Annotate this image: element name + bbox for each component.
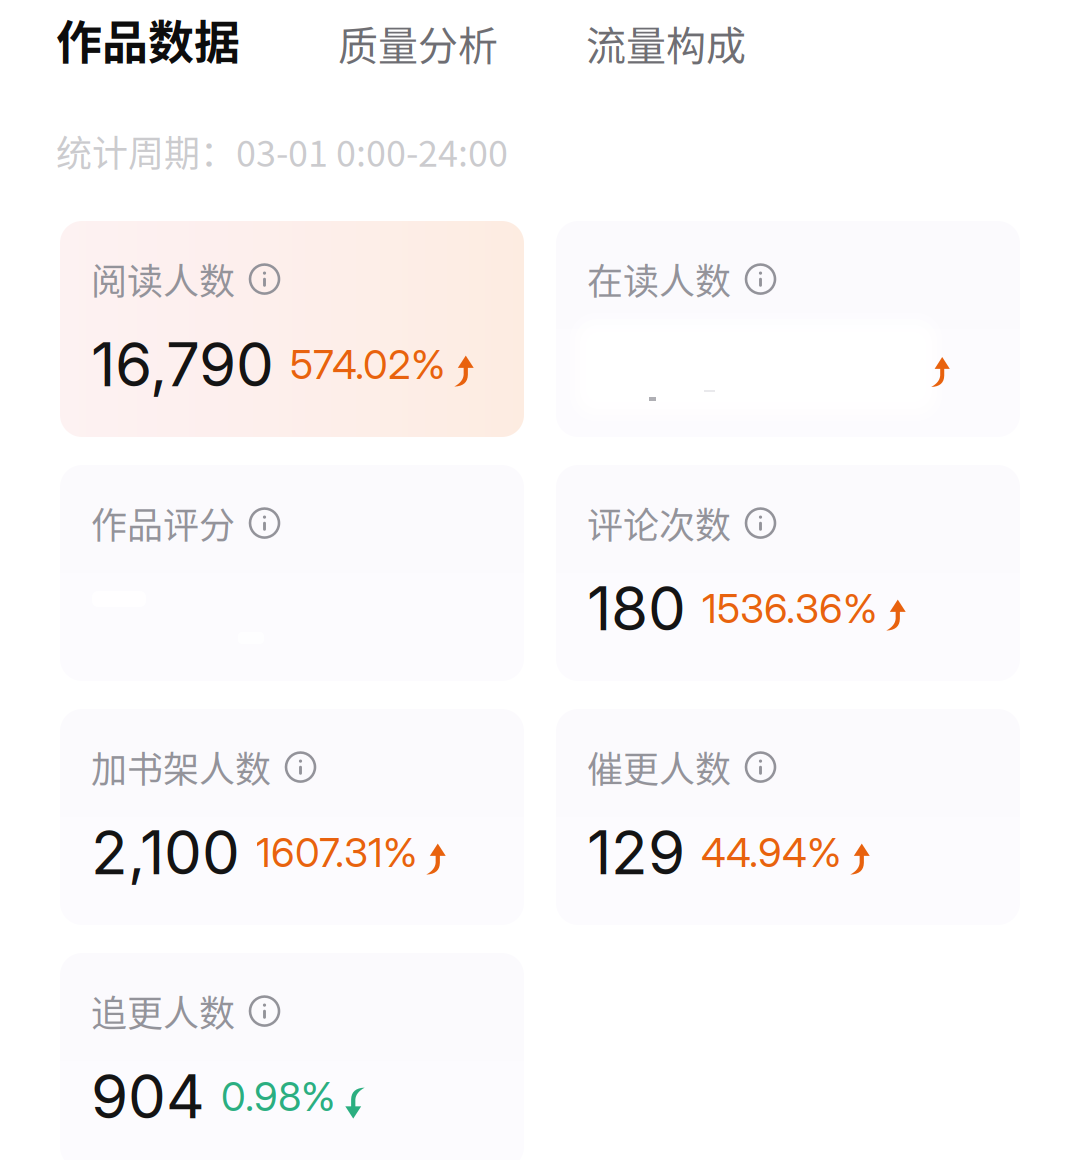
staticText: 0.98% (221, 1072, 335, 1121)
staticText: 统计周期：03-01 0:00-24:00 (56, 125, 508, 177)
staticText: 加书架人数 (91, 741, 271, 793)
staticText: 在读人数 (587, 253, 731, 305)
button[interactable]: 追更人数 (60, 953, 524, 1160)
button[interactable]: 阅读人数 (60, 221, 524, 437)
staticText: 质量分析 (338, 14, 498, 72)
button[interactable]: 关于催更人数 (746, 753, 775, 782)
staticText: 180 (587, 572, 686, 645)
button[interactable]: 催更人数 (556, 709, 1020, 925)
staticText: 阅读人数 (91, 253, 235, 305)
button[interactable]: 关于加书架人数 (286, 753, 315, 782)
button[interactable]: 关于在读人数 (746, 265, 775, 294)
staticText: 1607.31% (256, 828, 417, 877)
staticText: 16,790 (91, 328, 274, 401)
staticText: 流量构成 (586, 14, 746, 72)
staticText: 574.02% (290, 340, 445, 389)
button[interactable]: 作品评分 (60, 465, 524, 681)
staticText: 作品评分 (91, 497, 235, 549)
staticText: 129 (587, 816, 685, 889)
button[interactable]: 关于阅读人数 (250, 265, 279, 294)
button[interactable]: 流量构成 (586, 14, 746, 72)
button[interactable]: 加书架人数 (60, 709, 524, 925)
staticText: 2,100 (91, 816, 240, 889)
button[interactable]: 作品数据 (56, 5, 240, 72)
staticText: 44.94% (701, 828, 841, 877)
staticText: 追更人数 (91, 985, 235, 1037)
button[interactable]: 关于追更人数 (250, 997, 279, 1026)
staticText: 904 (91, 1060, 205, 1133)
button[interactable]: 在读人数 (556, 221, 1020, 437)
staticText: 1536.36% (702, 584, 877, 633)
button[interactable]: 关于作品评分 (250, 509, 279, 538)
staticText: 评论次数 (587, 497, 731, 549)
button[interactable]: 评论次数 (556, 465, 1020, 681)
button[interactable]: 质量分析 (338, 14, 498, 72)
button[interactable]: 关于评论次数 (746, 509, 775, 538)
staticText: 作品数据 (56, 5, 240, 72)
staticText: 催更人数 (587, 741, 731, 793)
